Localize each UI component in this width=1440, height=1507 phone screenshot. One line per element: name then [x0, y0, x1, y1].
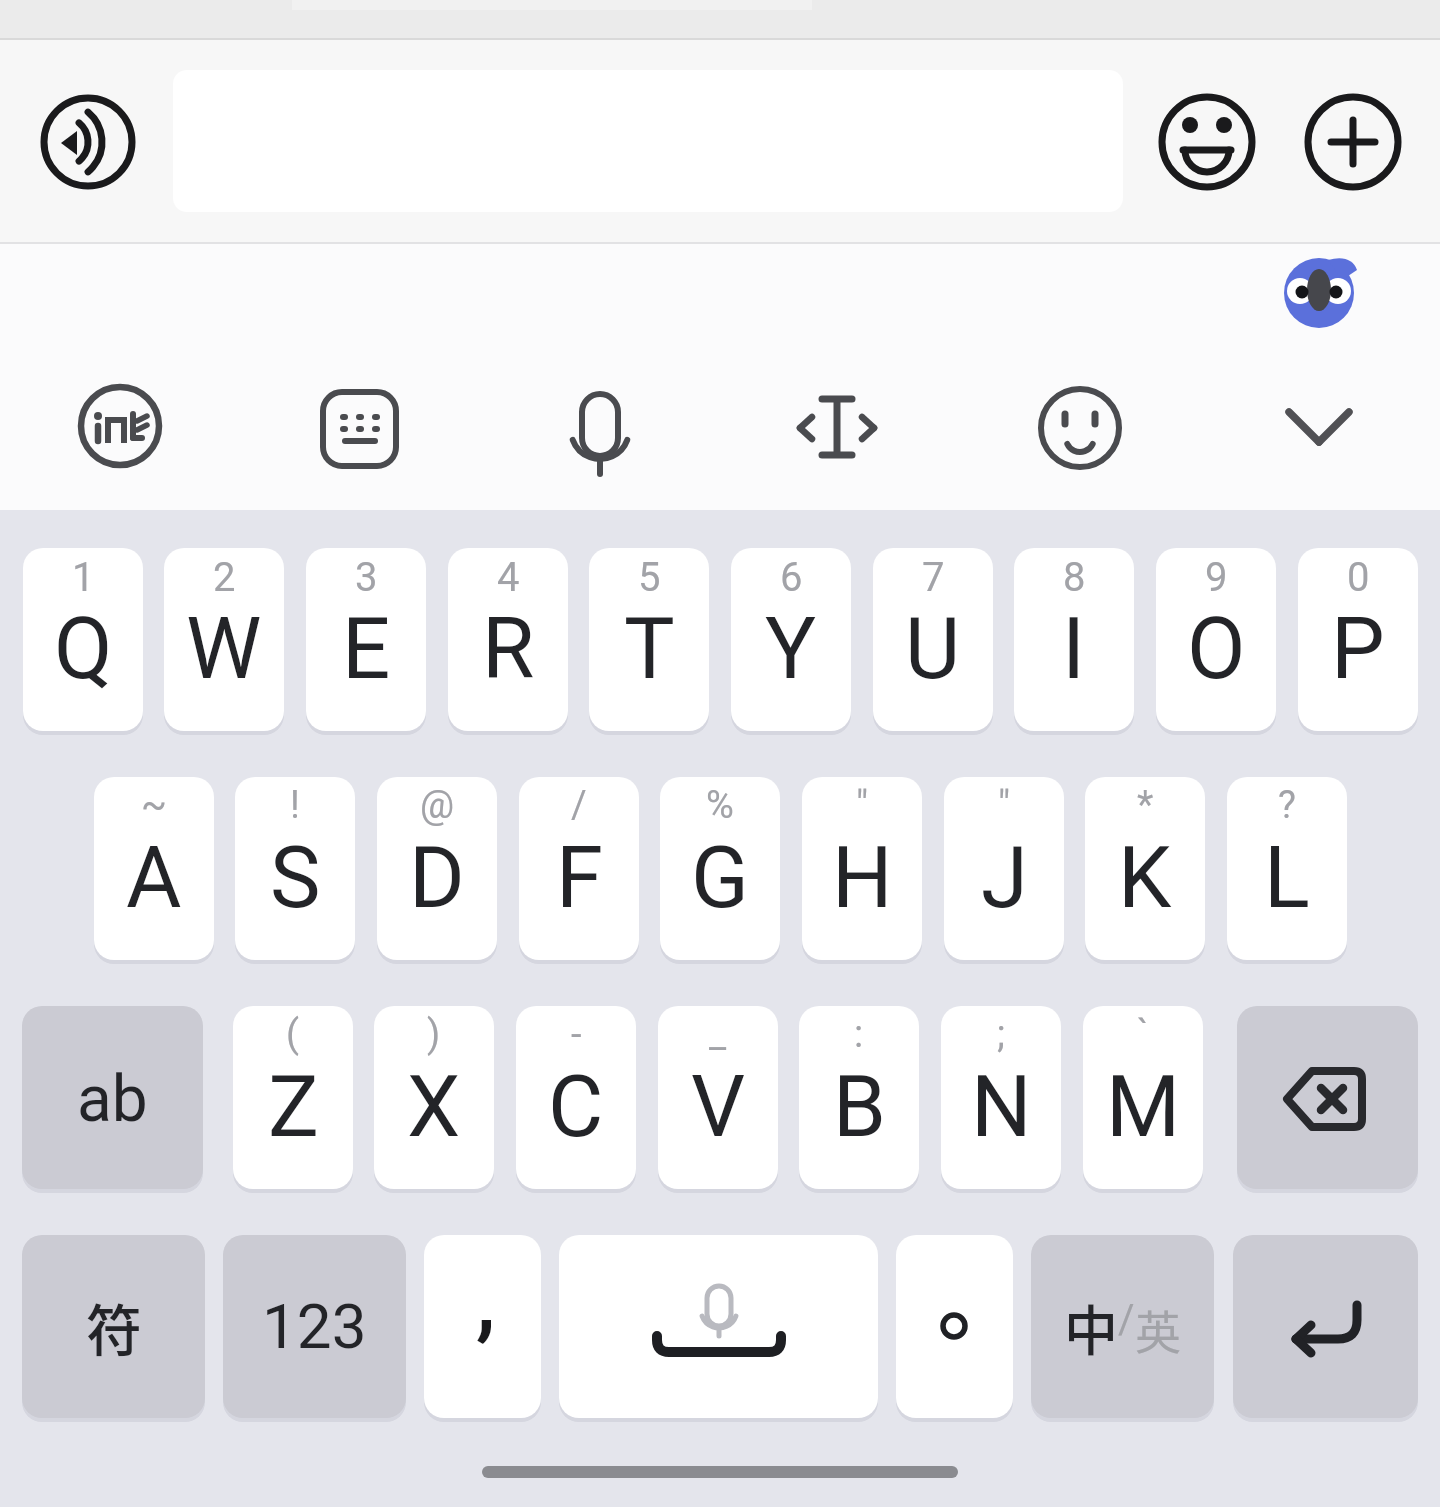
staticText: 6 [780, 554, 803, 601]
button[interactable]: @ [377, 777, 497, 960]
button[interactable]: 2 [164, 548, 284, 731]
staticText: H [832, 828, 893, 928]
staticText: * [1137, 783, 1154, 828]
staticText: % [706, 783, 734, 828]
staticText: W [186, 599, 262, 699]
staticText: C [548, 1057, 604, 1157]
button[interactable]: 9 [1156, 548, 1276, 731]
button[interactable] [540, 367, 660, 487]
staticText: O [1187, 599, 1246, 699]
staticText: " [856, 783, 869, 828]
staticText: 9 [1205, 554, 1228, 601]
staticText: 符 [86, 1286, 142, 1367]
button[interactable]: " [944, 777, 1064, 960]
button[interactable]: ! [235, 777, 355, 960]
staticText: B [833, 1057, 886, 1157]
staticText: N [971, 1057, 1032, 1157]
staticText: , [476, 1248, 496, 1351]
button[interactable]: 3 [306, 548, 426, 731]
staticText: 1 [72, 554, 95, 601]
button[interactable]: 6 [731, 548, 851, 731]
staticText: Q [54, 599, 113, 699]
button[interactable] [1233, 1235, 1418, 1418]
button[interactable]: * [1085, 777, 1205, 960]
button[interactable] [300, 367, 420, 487]
staticText: D [409, 828, 465, 928]
button[interactable]: 1 [23, 548, 143, 731]
button[interactable]: % [660, 777, 780, 960]
button[interactable]: ab [22, 1006, 203, 1189]
staticText: L [1264, 828, 1310, 928]
staticText: U [905, 599, 961, 699]
button[interactable]: , [424, 1235, 541, 1418]
staticText: 4 [497, 554, 520, 601]
staticText: Z [268, 1057, 319, 1157]
button[interactable]: ; [941, 1006, 1061, 1189]
staticText: A [126, 828, 182, 928]
staticText: 英 [1135, 1296, 1181, 1363]
staticText: _ [709, 1012, 727, 1057]
button[interactable]: ~ [94, 777, 214, 960]
staticText: R [482, 599, 535, 699]
staticText: ) [427, 1012, 441, 1057]
staticText: 中 [1064, 1288, 1118, 1366]
button[interactable] [1305, 94, 1401, 190]
button[interactable]: 7 [873, 548, 993, 731]
staticText: X [407, 1057, 461, 1157]
staticText: 123 [262, 1290, 367, 1363]
staticText: ; [997, 1012, 1006, 1057]
staticText: J [981, 828, 1028, 928]
button[interactable] [1237, 1006, 1418, 1189]
button[interactable]: - [516, 1006, 636, 1189]
button[interactable] [1159, 94, 1255, 190]
button[interactable] [780, 367, 900, 487]
staticText: 3 [355, 554, 378, 601]
staticText: ? [1278, 783, 1296, 828]
staticText: ( [286, 1012, 300, 1057]
staticText: T [624, 599, 675, 699]
staticText: M [1106, 1057, 1181, 1157]
staticText: 5 [638, 554, 661, 601]
button[interactable]: ( [233, 1006, 353, 1189]
button[interactable]: 5 [589, 548, 709, 731]
staticText: E [342, 599, 391, 699]
staticText: G [691, 828, 749, 928]
button[interactable]: " [802, 777, 922, 960]
staticText: - [571, 1012, 582, 1057]
button[interactable]: / [519, 777, 639, 960]
staticText: ! [290, 783, 300, 828]
button[interactable] [60, 367, 180, 487]
staticText: V [691, 1057, 746, 1157]
button[interactable]: 中 [1031, 1235, 1214, 1418]
staticText: " [998, 783, 1011, 828]
staticText: ~ [141, 783, 167, 828]
button[interactable] [40, 94, 136, 190]
staticText: @ [420, 783, 455, 828]
staticText: / [1118, 1296, 1135, 1343]
staticText: ab [77, 1062, 148, 1137]
button[interactable]: 0 [1298, 548, 1418, 731]
button[interactable]: 8 [1014, 548, 1134, 731]
button[interactable] [1260, 367, 1380, 487]
staticText: 8 [1063, 554, 1086, 601]
button[interactable] [896, 1235, 1013, 1418]
button[interactable]: 符 [22, 1235, 205, 1418]
button[interactable]: ? [1227, 777, 1347, 960]
staticText: 7 [922, 554, 945, 601]
button[interactable]: 123 [223, 1235, 406, 1418]
staticText: 0 [1347, 554, 1370, 601]
button[interactable]: ` [1083, 1006, 1203, 1189]
button[interactable] [559, 1235, 878, 1418]
button[interactable]: 4 [448, 548, 568, 731]
staticText: F [556, 828, 603, 928]
staticText: P [1331, 599, 1385, 699]
staticText: ` [1137, 1012, 1149, 1057]
staticText: Y [765, 599, 817, 699]
button[interactable]: ) [374, 1006, 494, 1189]
button[interactable]: _ [658, 1006, 778, 1189]
staticText: : [854, 1012, 864, 1057]
button[interactable]: : [799, 1006, 919, 1189]
button[interactable] [1020, 367, 1140, 487]
staticText: 2 [213, 554, 236, 601]
